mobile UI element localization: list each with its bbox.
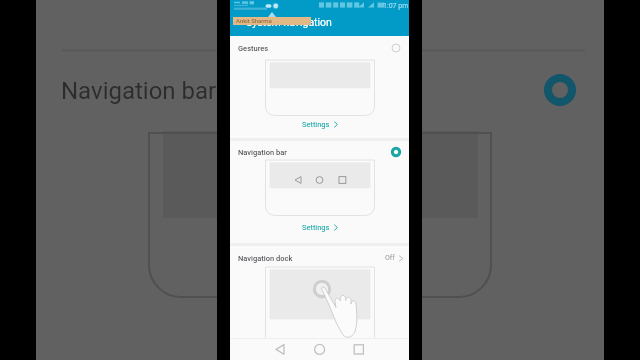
button[interactable]: Settings: [302, 223, 340, 232]
button[interactable]: Navigation dock: [230, 246, 409, 341]
staticText: 1:07 pm: [383, 2, 409, 10]
button[interactable]: Home: [310, 338, 330, 360]
button[interactable]: Back: [270, 338, 290, 360]
staticText: Off: [385, 254, 395, 262]
button[interactable]: Select option: [390, 42, 402, 54]
staticText: System navigation: [246, 16, 332, 28]
button[interactable]: Gestures: [230, 36, 409, 138]
button[interactable]: Recent apps: [349, 338, 369, 360]
button[interactable]: Settings: [302, 120, 340, 129]
staticText: Ankit Sharma: [236, 17, 272, 24]
button[interactable]: Selected option: [390, 146, 402, 158]
staticText: Navigation bar: [238, 148, 287, 157]
button[interactable]: Navigation bar: [230, 141, 409, 243]
staticText: Settings: [302, 120, 330, 129]
staticText: Navigation bar: [61, 77, 217, 105]
staticText: Gestures: [238, 44, 269, 53]
staticText: Settings: [302, 223, 330, 232]
staticText: Navigation dock: [238, 254, 293, 263]
